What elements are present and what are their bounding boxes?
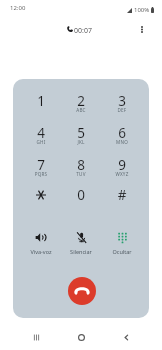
staticText: WXYZ [103, 171, 141, 177]
staticText: MNO [103, 139, 141, 145]
button[interactable]: 2 [62, 86, 100, 116]
button[interactable]: 5 [62, 118, 100, 148]
button[interactable]: More options [131, 17, 153, 41]
button[interactable]: Ocultar [101, 231, 143, 261]
staticText: 3 [103, 92, 141, 110]
staticText: # [103, 186, 141, 204]
staticText: 00:07 [74, 26, 92, 36]
staticText: 9 [103, 156, 141, 174]
staticText: 7 [22, 156, 60, 174]
staticText: ABC [62, 107, 100, 113]
button[interactable]: 4 [22, 118, 60, 148]
staticText: Ocultar [112, 248, 132, 255]
button[interactable]: 3 [103, 86, 141, 116]
button[interactable]: Silenciar [60, 231, 102, 261]
button[interactable]: 9 [103, 150, 141, 180]
staticText: DEF [103, 107, 141, 113]
staticText: 6 [103, 124, 141, 142]
staticText: TUV [62, 171, 100, 177]
button[interactable]: 0 [62, 180, 100, 210]
button[interactable]: # [103, 180, 141, 210]
button[interactable]: 1 [22, 86, 60, 116]
button[interactable]: End call [68, 277, 96, 305]
button[interactable]: Viva-voz [20, 231, 62, 261]
button[interactable]: 8 [62, 150, 100, 180]
staticText: 4 [22, 124, 60, 142]
staticText: Viva-voz [30, 248, 52, 255]
staticText: GHI [22, 139, 60, 145]
button[interactable]: Recent apps [22, 325, 50, 350]
staticText: PQRS [22, 171, 60, 177]
button[interactable]: Home [67, 325, 95, 350]
staticText: Silenciar [70, 248, 92, 255]
staticText: 100% [134, 6, 150, 14]
button[interactable]: Back [112, 325, 140, 350]
staticText: 0 [62, 186, 100, 204]
staticText: 5 [62, 124, 100, 142]
staticText: 2 [62, 92, 100, 110]
staticText: 12:00 [10, 4, 26, 12]
staticText: JKL [62, 139, 100, 145]
staticText: 1 [22, 92, 60, 110]
button[interactable]: 6 [103, 118, 141, 148]
button[interactable]: 7 [22, 150, 60, 180]
button[interactable] [22, 180, 60, 210]
staticText: 8 [62, 156, 100, 174]
